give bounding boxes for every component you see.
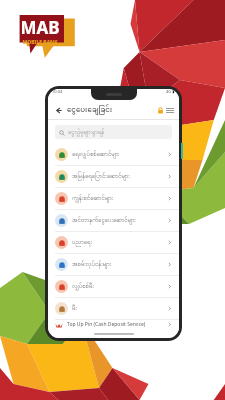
button[interactable]: Secure [157,107,174,114]
staticText: မီး [72,304,77,313]
button[interactable]: Back [53,105,64,116]
button[interactable]: အမြန်ရေပြောင်းဆောင်များ [48,166,179,187]
button[interactable]: ပညာရေး [48,232,179,253]
staticText: ကျွန်းစင်ဆောင်များ [72,194,114,203]
button[interactable]: Top Up Pin (Cash Deposit Service) [48,320,179,329]
button[interactable]: အင်တာနက်ငွေပေးဆောင်များ [48,210,179,231]
staticText: အစမ်းလုပ်ငန်းများ [72,260,112,269]
staticText: Top Up Pin (Cash Deposit Service) [67,321,146,328]
staticText: အင်တာနက်ငွေပေးဆောင်များ [72,216,136,225]
button[interactable]: ရေ၊လျှပ်စစ်ဆောင်များ [48,144,179,165]
staticText: ပညာရေး [72,238,92,247]
button[interactable]: ကျွန်းစင်ဆောင်များ [48,188,179,209]
button[interactable]: လျှပ်စစ်မီး [48,276,179,297]
staticText: အမြန်ရေပြောင်းဆောင်များ [72,172,130,181]
staticText: ရေ၊လျှပ်စစ်ဆောင်များ [72,150,120,159]
staticText: ငွေလွှဲမှုများရှာရန် [68,128,105,137]
staticText: ငွေပေးချေခြင်း [67,103,113,118]
button[interactable]: ငွေလွှဲမှုများရှာရန် [55,125,172,139]
staticText: MAB [20,16,60,39]
button[interactable]: အစမ်းလုပ်ငန်းများ [48,254,179,275]
button[interactable]: မီး [48,298,179,319]
staticText: 4G ▮ [166,89,175,94]
staticText: MOBILE BANK [22,39,58,46]
staticText: လျှပ်စစ်မီး [72,282,94,291]
staticText: 10:04 [52,89,63,94]
